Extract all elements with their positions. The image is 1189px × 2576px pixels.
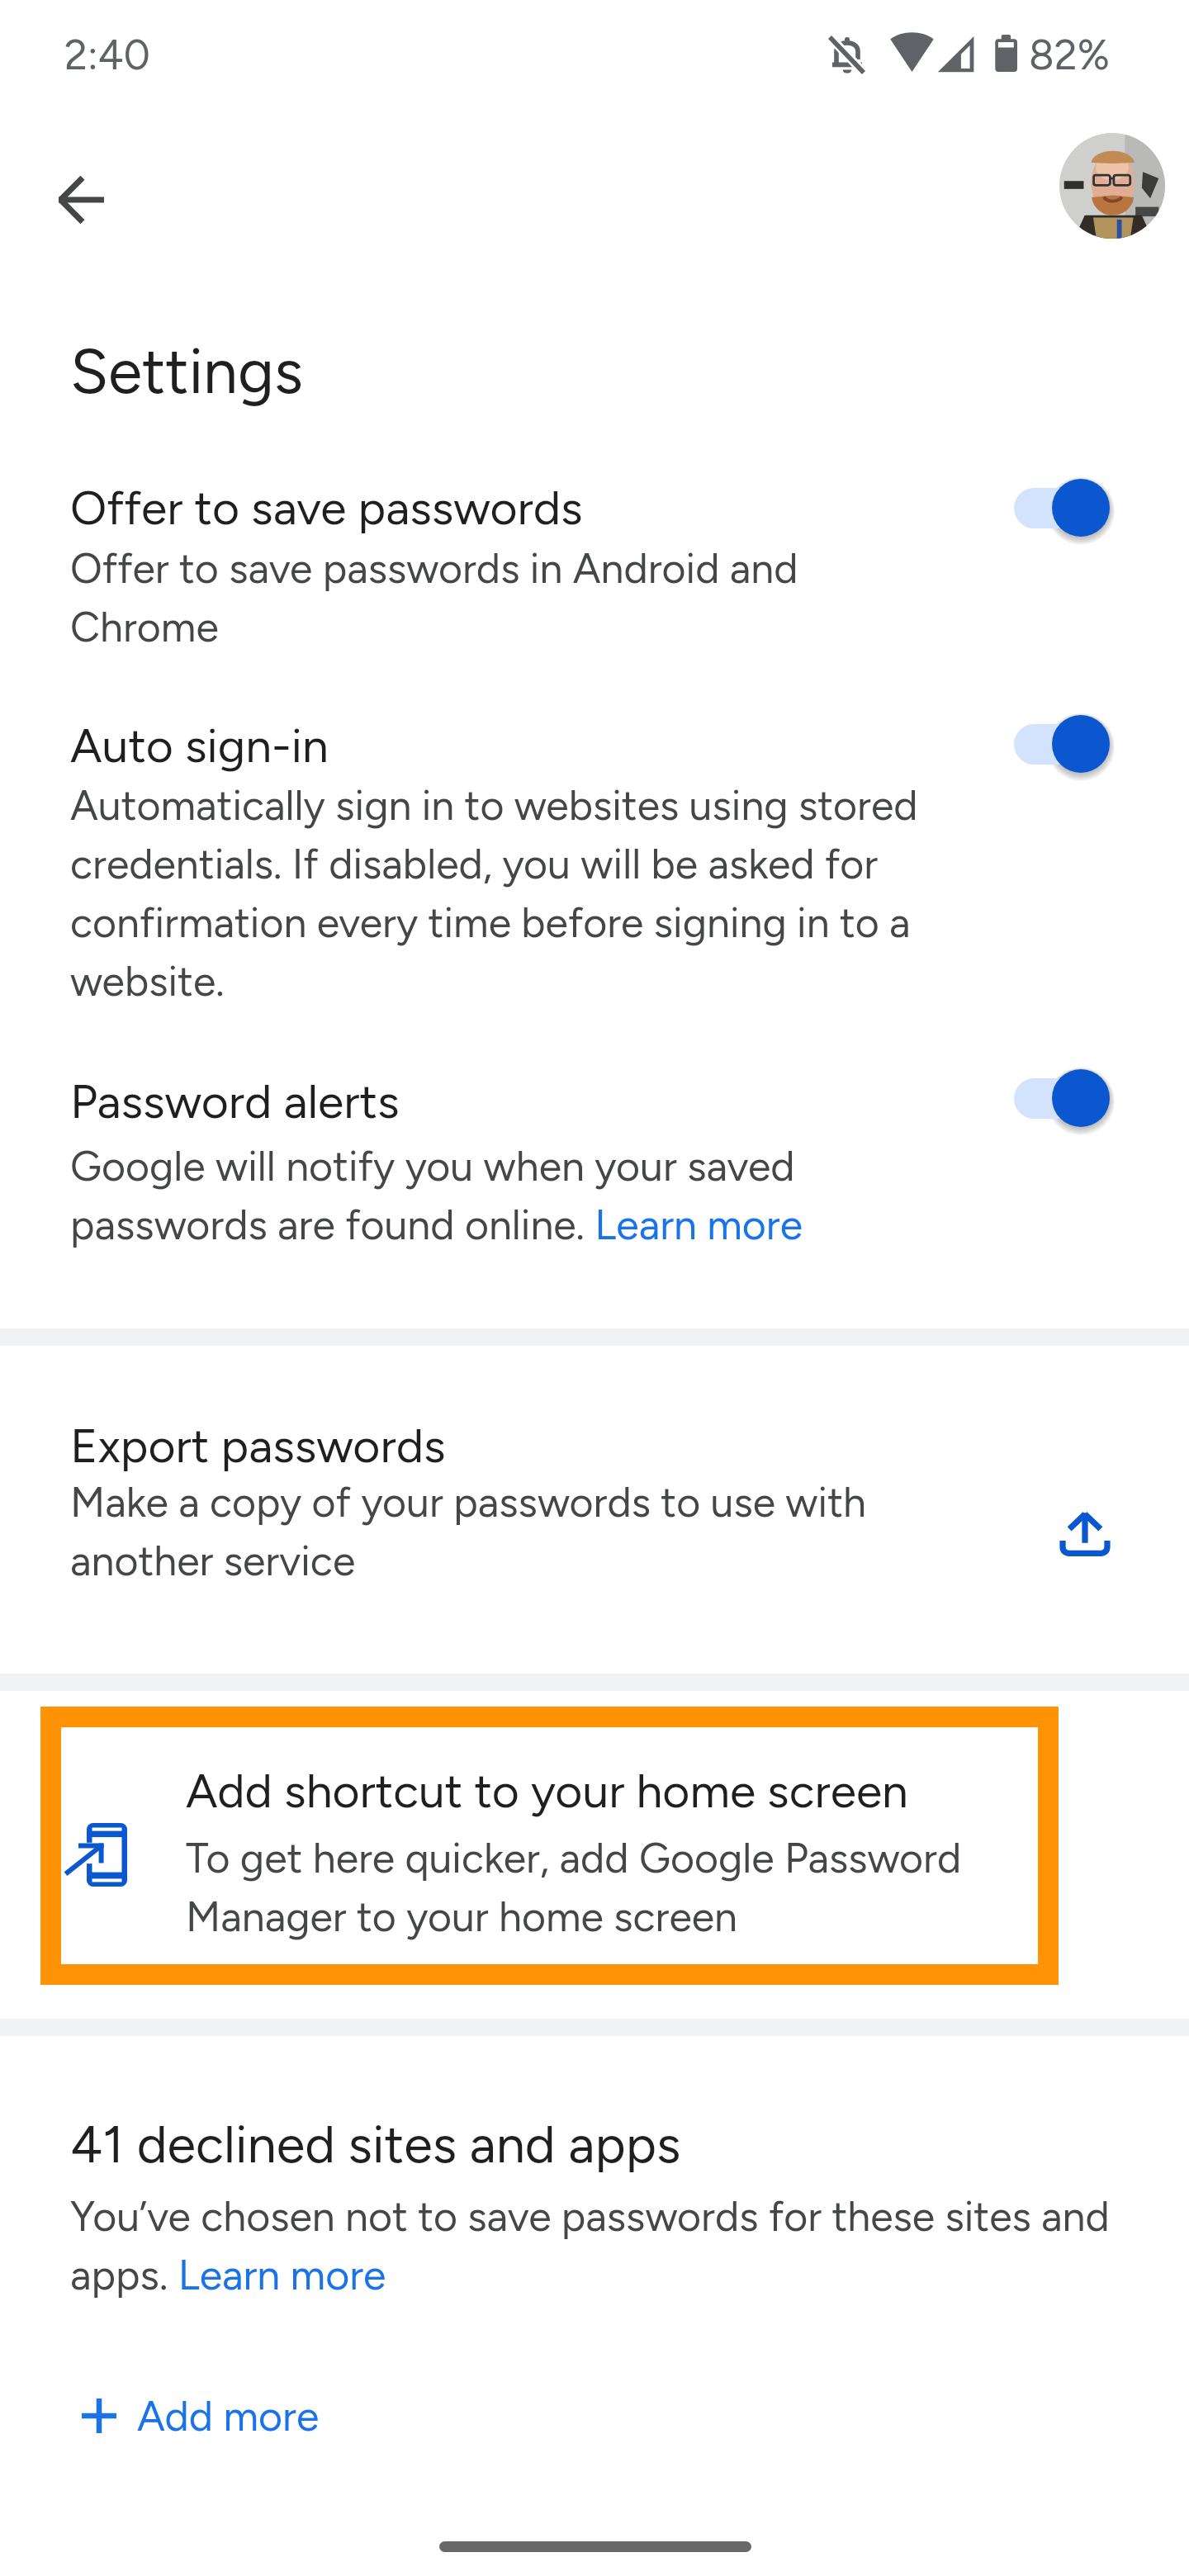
staticText: Settings: [70, 334, 303, 409]
button[interactable]: Add shortcut to your home screen: [61, 1727, 1038, 1964]
staticText: Auto sign-in: [70, 717, 329, 774]
staticText: 41 declined sites and apps: [70, 2113, 681, 2176]
button[interactable]: Account: [1059, 133, 1165, 239]
staticText: Make a copy of your passwords to use wit…: [70, 1470, 904, 1588]
staticText: 2:40: [64, 30, 150, 79]
other: Export: [1061, 1511, 1109, 1558]
button[interactable]: 41 declined sites and apps: [0, 2036, 1189, 2317]
staticText: 82%: [1029, 30, 1110, 79]
button[interactable]: [0, 462, 1189, 661]
button[interactable]: [0, 1053, 1189, 1255]
button[interactable]: Back: [40, 159, 121, 240]
staticText: Export passwords: [70, 1418, 446, 1474]
staticText: Offer to save passwords in Android and C…: [70, 537, 945, 654]
staticText: Add more: [137, 2391, 320, 2441]
button[interactable]: Add more: [72, 2377, 329, 2455]
staticText: Password alerts: [70, 1073, 400, 1129]
button[interactable]: Toggle: [1014, 1069, 1113, 1129]
staticText: Add shortcut to your home screen: [186, 1763, 908, 1819]
staticText: Google will notify you when your saved p…: [70, 1134, 945, 1252]
staticText: Offer to save passwords: [70, 480, 583, 536]
button[interactable]: Toggle: [1014, 715, 1113, 774]
button[interactable]: Export passwords: [0, 1346, 1189, 1674]
button[interactable]: [0, 698, 1189, 1016]
staticText: To get here quicker, add Google Password…: [186, 1826, 1011, 1944]
button[interactable]: Toggle: [1014, 479, 1113, 538]
staticText: Automatically sign in to websites using …: [70, 774, 945, 1008]
staticText: You’ve chosen not to save passwords for …: [70, 2185, 1120, 2302]
